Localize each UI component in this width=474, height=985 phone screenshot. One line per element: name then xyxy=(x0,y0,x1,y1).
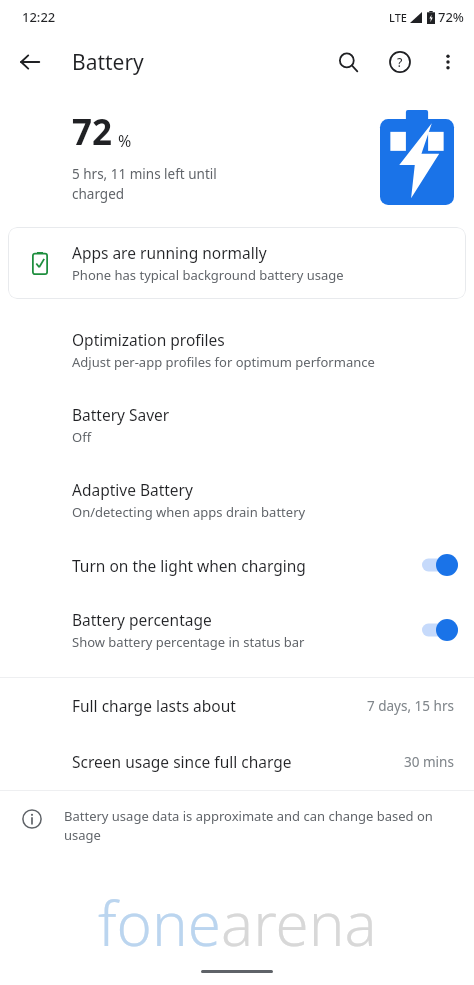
staticText: Turn on the light when charging xyxy=(72,555,306,576)
staticText: 7 days, 15 hrs xyxy=(367,697,454,715)
button[interactable]: Battery percentage xyxy=(0,593,474,668)
staticText: Phone has typical background battery usa… xyxy=(72,266,344,284)
staticText: Off xyxy=(72,428,92,446)
button[interactable]: More options xyxy=(426,40,470,84)
staticText: 72% xyxy=(438,8,464,26)
staticText: Full charge lasts about xyxy=(72,695,367,716)
button[interactable]: Full charge lasts about xyxy=(0,678,474,734)
staticText: Adjust per-app profiles for optimum perf… xyxy=(72,353,375,371)
button[interactable]: Screen usage since full charge xyxy=(0,734,474,790)
button[interactable]: Apps are running normally xyxy=(8,227,466,299)
staticText: Battery usage data is approximate and ca… xyxy=(64,807,450,844)
staticText: Screen usage since full charge xyxy=(72,751,404,772)
button[interactable]: Search xyxy=(326,40,370,84)
button[interactable]: Battery Saver xyxy=(0,388,474,463)
staticText: Show battery percentage in status bar xyxy=(72,633,305,651)
staticText: 12:22 xyxy=(22,8,56,26)
staticText: Battery xyxy=(72,48,144,77)
button[interactable]: Help xyxy=(378,40,422,84)
button[interactable]: Turn on the light when charging xyxy=(0,538,474,593)
staticText: ? xyxy=(397,54,403,70)
staticText: 72 xyxy=(72,108,113,156)
staticText: Optimization profiles xyxy=(72,329,225,350)
staticText: Battery percentage xyxy=(72,609,212,630)
staticText: 5 hrs, 11 mins left until charged xyxy=(72,165,217,203)
staticText: On/detecting when apps drain battery xyxy=(72,503,306,521)
staticText: LTE xyxy=(389,10,407,25)
staticText: Battery Saver xyxy=(72,404,170,425)
staticText: Adaptive Battery xyxy=(72,479,193,500)
button[interactable]: Adaptive Battery xyxy=(0,463,474,538)
button[interactable]: Optimization profiles xyxy=(0,313,474,388)
staticText: arena xyxy=(221,882,377,964)
button[interactable]: Back xyxy=(8,40,52,84)
staticText: 30 mins xyxy=(404,753,454,771)
staticText: Apps are running normally xyxy=(72,242,267,263)
staticText: fone xyxy=(98,882,221,964)
staticText: % xyxy=(118,130,132,152)
